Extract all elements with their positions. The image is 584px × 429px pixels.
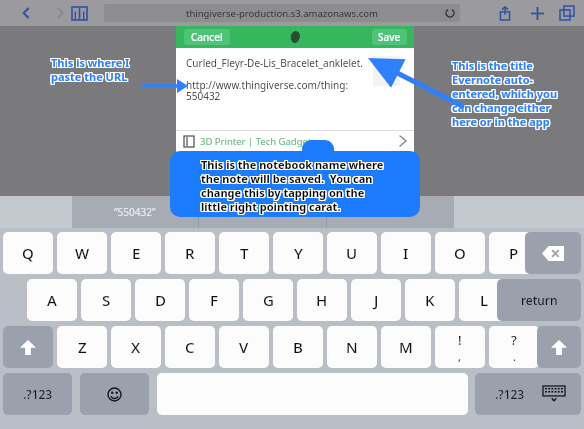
button[interactable]: L (459, 279, 509, 321)
staticText: V (239, 337, 249, 357)
staticText: P (509, 243, 519, 263)
button[interactable]: B (273, 326, 323, 368)
button[interactable]: J (351, 279, 401, 321)
staticText: J (374, 290, 379, 310)
staticText: This is where I paste the URL (52, 56, 131, 85)
button[interactable]: Q (3, 232, 53, 274)
button[interactable]: Emoji (80, 373, 149, 415)
button[interactable]: ! (435, 326, 485, 368)
button[interactable]: O (435, 232, 485, 274)
staticText: O (454, 243, 466, 263)
button[interactable]: W (57, 232, 107, 274)
staticText: R (185, 243, 195, 263)
staticText: This is the title Evernote auto- entered… (453, 57, 559, 128)
staticText: This is the notebook name where the note… (202, 156, 385, 213)
staticText: K (425, 290, 435, 310)
button[interactable]: 3D Printer | Tech Gadgets (176, 130, 414, 152)
button[interactable]: Share (492, 0, 518, 26)
staticText: W (75, 243, 90, 263)
button[interactable]: K (405, 279, 455, 321)
staticText: This is the notebook name where the note… (202, 158, 385, 215)
staticText: E (132, 243, 141, 263)
button[interactable]: R (165, 232, 215, 274)
button[interactable]: Z (57, 326, 107, 368)
button[interactable]: X (111, 326, 161, 368)
staticText: This is the notebook name where the note… (200, 158, 383, 215)
staticText: Cancel (191, 30, 223, 44)
staticText: This is the title Evernote auto- entered… (452, 57, 558, 128)
staticText: This is the title Evernote auto- entered… (453, 59, 559, 130)
staticText: This is the notebook name where the note… (200, 156, 383, 213)
staticText: This is the title Evernote auto- entered… (452, 59, 558, 130)
button[interactable]: return (497, 279, 581, 321)
staticText: Q (22, 243, 34, 263)
staticText: This is the notebook name where the note… (201, 156, 384, 213)
button[interactable]: U (327, 232, 377, 274)
staticText: This is the title Evernote auto- entered… (452, 58, 558, 129)
staticText: G (263, 290, 274, 310)
staticText: This is where I paste the URL (50, 56, 129, 85)
button[interactable]: C (165, 326, 215, 368)
button[interactable]: V (219, 326, 269, 368)
staticText: This is where I paste the URL (50, 55, 129, 84)
button[interactable]: H (297, 279, 347, 321)
staticText: This is where I paste the URL (51, 56, 130, 85)
staticText: thingiverse-production.s3.amazonaws.com (186, 7, 378, 20)
staticText: N (346, 337, 358, 357)
button[interactable]: Y (273, 232, 323, 274)
button[interactable]: T (219, 232, 269, 274)
staticText: This is where I paste the URL (52, 55, 131, 84)
button[interactable]: “550432” (72, 196, 198, 228)
button[interactable] (199, 196, 326, 228)
staticText: Y (294, 243, 303, 263)
staticText: . (513, 349, 516, 364)
staticText: H (316, 290, 328, 310)
staticText: C (185, 337, 195, 357)
button[interactable]: E (111, 232, 161, 274)
staticText: S (102, 290, 111, 310)
staticText: 3D Printer | Tech Gadgets (200, 135, 316, 148)
staticText: This is where I paste the URL (51, 55, 130, 84)
button[interactable]: Save (372, 29, 407, 45)
button[interactable]: S (81, 279, 131, 321)
button[interactable]: Tabs (554, 0, 580, 26)
button[interactable]: ? (489, 326, 539, 368)
button[interactable]: F (189, 279, 239, 321)
button[interactable]: I (381, 232, 431, 274)
staticText: X (131, 337, 141, 357)
button[interactable]: P (489, 232, 539, 274)
button[interactable]: Reload (443, 6, 457, 20)
staticText: M (399, 337, 413, 357)
staticText: return (521, 292, 558, 308)
staticText: This is the notebook name where the note… (201, 157, 384, 214)
button[interactable]: Bookmarks (62, 0, 96, 26)
button[interactable]: M (381, 326, 431, 368)
staticText: This is the title Evernote auto- entered… (453, 58, 559, 129)
button[interactable]: Forward (44, 0, 76, 26)
button[interactable]: thingiverse-production.s3.amazonaws.com (104, 4, 460, 22)
staticText: .?123 (23, 386, 53, 402)
staticText: This is the notebook name where the note… (200, 157, 383, 214)
button[interactable]: A (27, 279, 77, 321)
staticText: A (47, 290, 57, 310)
button[interactable]: .?123 (3, 373, 72, 415)
button[interactable]: Back (10, 0, 42, 26)
staticText: T (240, 243, 249, 263)
button[interactable]: Hide keyboard (526, 373, 581, 415)
staticText: I (403, 243, 409, 263)
button[interactable]: G (243, 279, 293, 321)
staticText: This is where I paste the URL (50, 54, 129, 83)
staticText: http://www.thingiverse.com/thing: 550432 (186, 78, 366, 103)
staticText: This is the title Evernote auto- entered… (451, 59, 557, 130)
button[interactable] (327, 196, 454, 228)
button[interactable]: New tab (524, 0, 550, 26)
button[interactable]: D (135, 279, 185, 321)
button[interactable]: Backspace (525, 232, 581, 274)
button[interactable]: Cancel (184, 29, 230, 45)
button[interactable]: .?123 (475, 373, 544, 415)
button[interactable]: Shift (537, 326, 581, 368)
button[interactable]: N (327, 326, 377, 368)
button[interactable]: Shift (3, 326, 53, 368)
staticText: D (155, 290, 166, 310)
